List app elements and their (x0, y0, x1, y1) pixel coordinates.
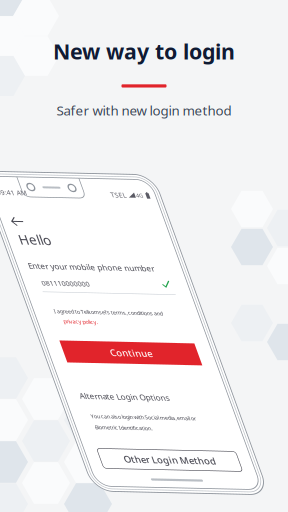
staticText: 4G (128, 188, 135, 196)
staticText: 081110000000 (1, 278, 49, 287)
staticText: Continue (44, 345, 86, 357)
button[interactable]: Continue (0, 340, 133, 362)
staticText: Biometric Identification. (2, 423, 59, 430)
button[interactable]: Back (0, 210, 12, 232)
staticText: privacy policy. (9, 317, 43, 324)
staticText: You can also login with Social media, em… (2, 412, 107, 419)
staticText: Alternate Login Options (0, 390, 88, 401)
staticText: TSEL (103, 188, 118, 196)
staticText: 09:41 AM (0, 188, 19, 196)
staticText: New way to login (53, 37, 235, 65)
staticText: Hello (0, 230, 26, 248)
staticText: I agreed to Telkomsel's terms, condition… (3, 307, 112, 314)
staticText: Other Login Method (19, 452, 111, 464)
button[interactable]: Other Login Method (0, 448, 135, 468)
staticText: Safer with new login method (56, 101, 231, 119)
staticText: Enter your mobile phone number (0, 260, 120, 271)
